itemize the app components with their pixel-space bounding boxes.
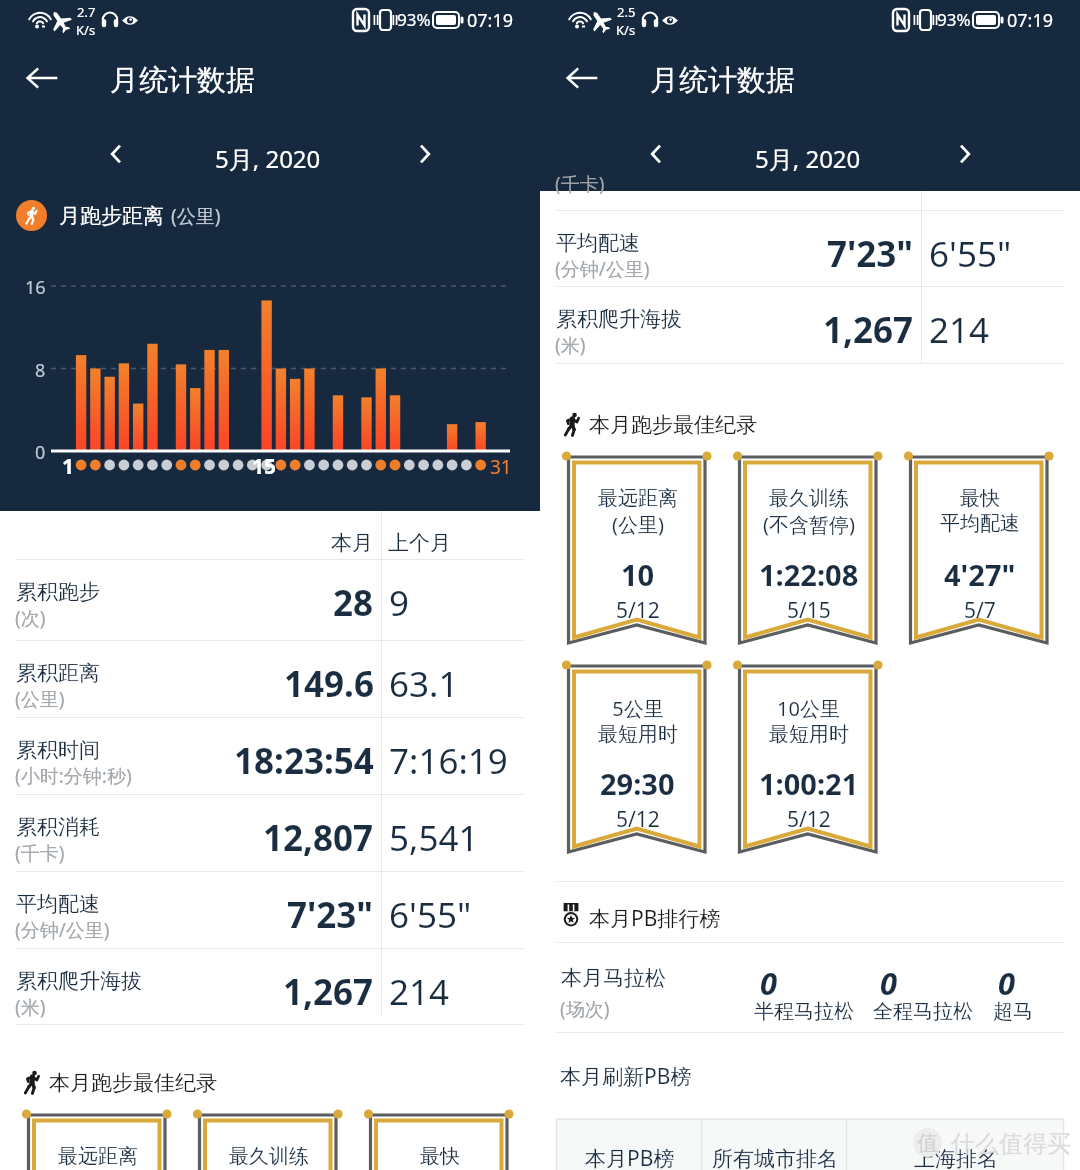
- staticText: 平均配速: [940, 511, 1020, 536]
- staticText: 0: [35, 440, 46, 465]
- staticText: 最短用时: [598, 722, 678, 747]
- button[interactable]: Back: [557, 53, 607, 103]
- staticText: 10公里: [777, 695, 840, 722]
- staticText: 1,267: [283, 968, 374, 1016]
- staticText: K/s: [616, 21, 636, 39]
- staticText: (公里): [15, 686, 65, 712]
- staticText: 5/12: [616, 805, 660, 834]
- staticText: 累积时间: [16, 737, 100, 763]
- staticText: 0: [998, 962, 1016, 1004]
- staticText: 最快: [960, 486, 1000, 511]
- button[interactable]: 平均配速: [540, 211, 1080, 287]
- staticText: (千卡): [15, 840, 65, 866]
- staticText: 5/7: [964, 596, 996, 625]
- staticText: 半程马拉松: [754, 999, 854, 1024]
- staticText: 07:19: [1007, 8, 1054, 33]
- staticText: 18:23:54: [234, 737, 374, 785]
- staticText: 本月: [331, 530, 373, 556]
- staticText: (不含暂停): [763, 511, 855, 538]
- staticText: 上个月: [388, 530, 451, 556]
- staticText: (次): [15, 605, 46, 631]
- button[interactable]: 5公里: [564, 661, 714, 855]
- staticText: 93%: [397, 8, 431, 31]
- staticText: 超马: [993, 999, 1033, 1024]
- staticText: 累积爬升海拔: [16, 968, 142, 994]
- staticText: 07:19: [467, 8, 514, 33]
- staticText: 本月马拉松: [561, 965, 666, 991]
- staticText: 5月, 2020: [215, 142, 321, 175]
- button[interactable]: 累积距离: [0, 641, 540, 718]
- staticText: 5月, 2020: [755, 142, 861, 175]
- staticText: 本月跑步最佳纪录: [49, 1070, 217, 1096]
- staticText: 最久训练: [229, 1144, 309, 1169]
- staticText: 2.7: [77, 3, 96, 21]
- staticText: 8: [35, 358, 46, 383]
- button[interactable]: 本月跑步最佳纪录: [0, 1056, 540, 1110]
- staticText: 最短用时: [769, 722, 849, 747]
- button[interactable]: 累积爬升海拔: [0, 949, 540, 1025]
- staticText: 10: [621, 555, 655, 594]
- staticText: 2.5: [617, 3, 636, 21]
- button[interactable]: 累积时间: [0, 718, 540, 795]
- button[interactable]: 最快: [906, 452, 1056, 646]
- staticText: 值: [917, 1130, 938, 1156]
- staticText: 7:16:19: [389, 737, 508, 785]
- staticText: 149.6: [284, 660, 374, 708]
- staticText: 1,267: [823, 306, 914, 354]
- button[interactable]: 最久训练: [735, 452, 885, 646]
- button[interactable]: Back: [17, 53, 67, 103]
- button[interactable]: 最久训练: [195, 1110, 345, 1170]
- staticText: 本月跑步最佳纪录: [589, 412, 757, 438]
- staticText: (分钟/公里): [555, 256, 650, 282]
- button[interactable]: Next month: [939, 129, 989, 179]
- staticText: 平均配速: [16, 891, 100, 917]
- staticText: (公里): [171, 203, 221, 229]
- staticText: 7'23": [287, 891, 374, 939]
- button[interactable]: 最远距离: [24, 1110, 174, 1170]
- button[interactable]: 平均配速: [0, 872, 540, 949]
- staticText: (米): [555, 332, 586, 358]
- button[interactable]: 本月刷新PB榜: [540, 1033, 1080, 1119]
- staticText: 累积爬升海拔: [556, 306, 682, 332]
- staticText: 28: [333, 579, 374, 627]
- button[interactable]: Previous month: [92, 129, 142, 179]
- staticText: (分钟/公里): [15, 917, 110, 943]
- staticText: 1:00:21: [759, 764, 859, 803]
- button[interactable]: 本月PB榜: [557, 1119, 702, 1170]
- staticText: 本月PB榜: [585, 1144, 675, 1170]
- staticText: 累积消耗: [16, 814, 100, 840]
- staticText: 最久训练: [769, 486, 849, 511]
- staticText: 0: [880, 962, 898, 1004]
- staticText: 最快: [420, 1144, 460, 1169]
- staticText: 本月刷新PB榜: [560, 1062, 692, 1091]
- button[interactable]: 所有城市排名: [702, 1119, 847, 1170]
- staticText: 本月PB排行榜: [589, 904, 721, 933]
- staticText: 累积跑步: [16, 579, 100, 605]
- staticText: 93%: [937, 8, 971, 31]
- button[interactable]: 本月马拉松: [540, 943, 1080, 1032]
- staticText: 12,807: [263, 814, 374, 862]
- staticText: 上海排名: [914, 1146, 998, 1170]
- button[interactable]: 累积跑步: [0, 560, 540, 641]
- button[interactable]: Next month: [399, 129, 449, 179]
- staticText: (米): [15, 994, 46, 1020]
- staticText: 月跑步距离: [59, 203, 164, 229]
- button[interactable]: 10公里: [735, 661, 885, 855]
- staticText: 6'55": [929, 230, 1012, 278]
- staticText: 月统计数据: [650, 62, 795, 99]
- staticText: 7'23": [827, 230, 914, 278]
- button[interactable]: 本月PB排行榜: [540, 882, 1080, 942]
- button[interactable]: 本月跑步最佳纪录: [540, 398, 1080, 452]
- staticText: 最远距离: [58, 1144, 138, 1169]
- button[interactable]: 最快: [366, 1110, 516, 1170]
- staticText: 9: [389, 579, 410, 627]
- button[interactable]: Previous month: [632, 129, 682, 179]
- button[interactable]: 上海排名: [847, 1119, 1064, 1170]
- button[interactable]: 最远距离: [564, 452, 714, 646]
- button[interactable]: 累积消耗: [0, 795, 540, 872]
- staticText: 0: [760, 962, 778, 1004]
- staticText: (场次): [560, 996, 610, 1022]
- button[interactable]: 累积爬升海拔: [540, 287, 1080, 364]
